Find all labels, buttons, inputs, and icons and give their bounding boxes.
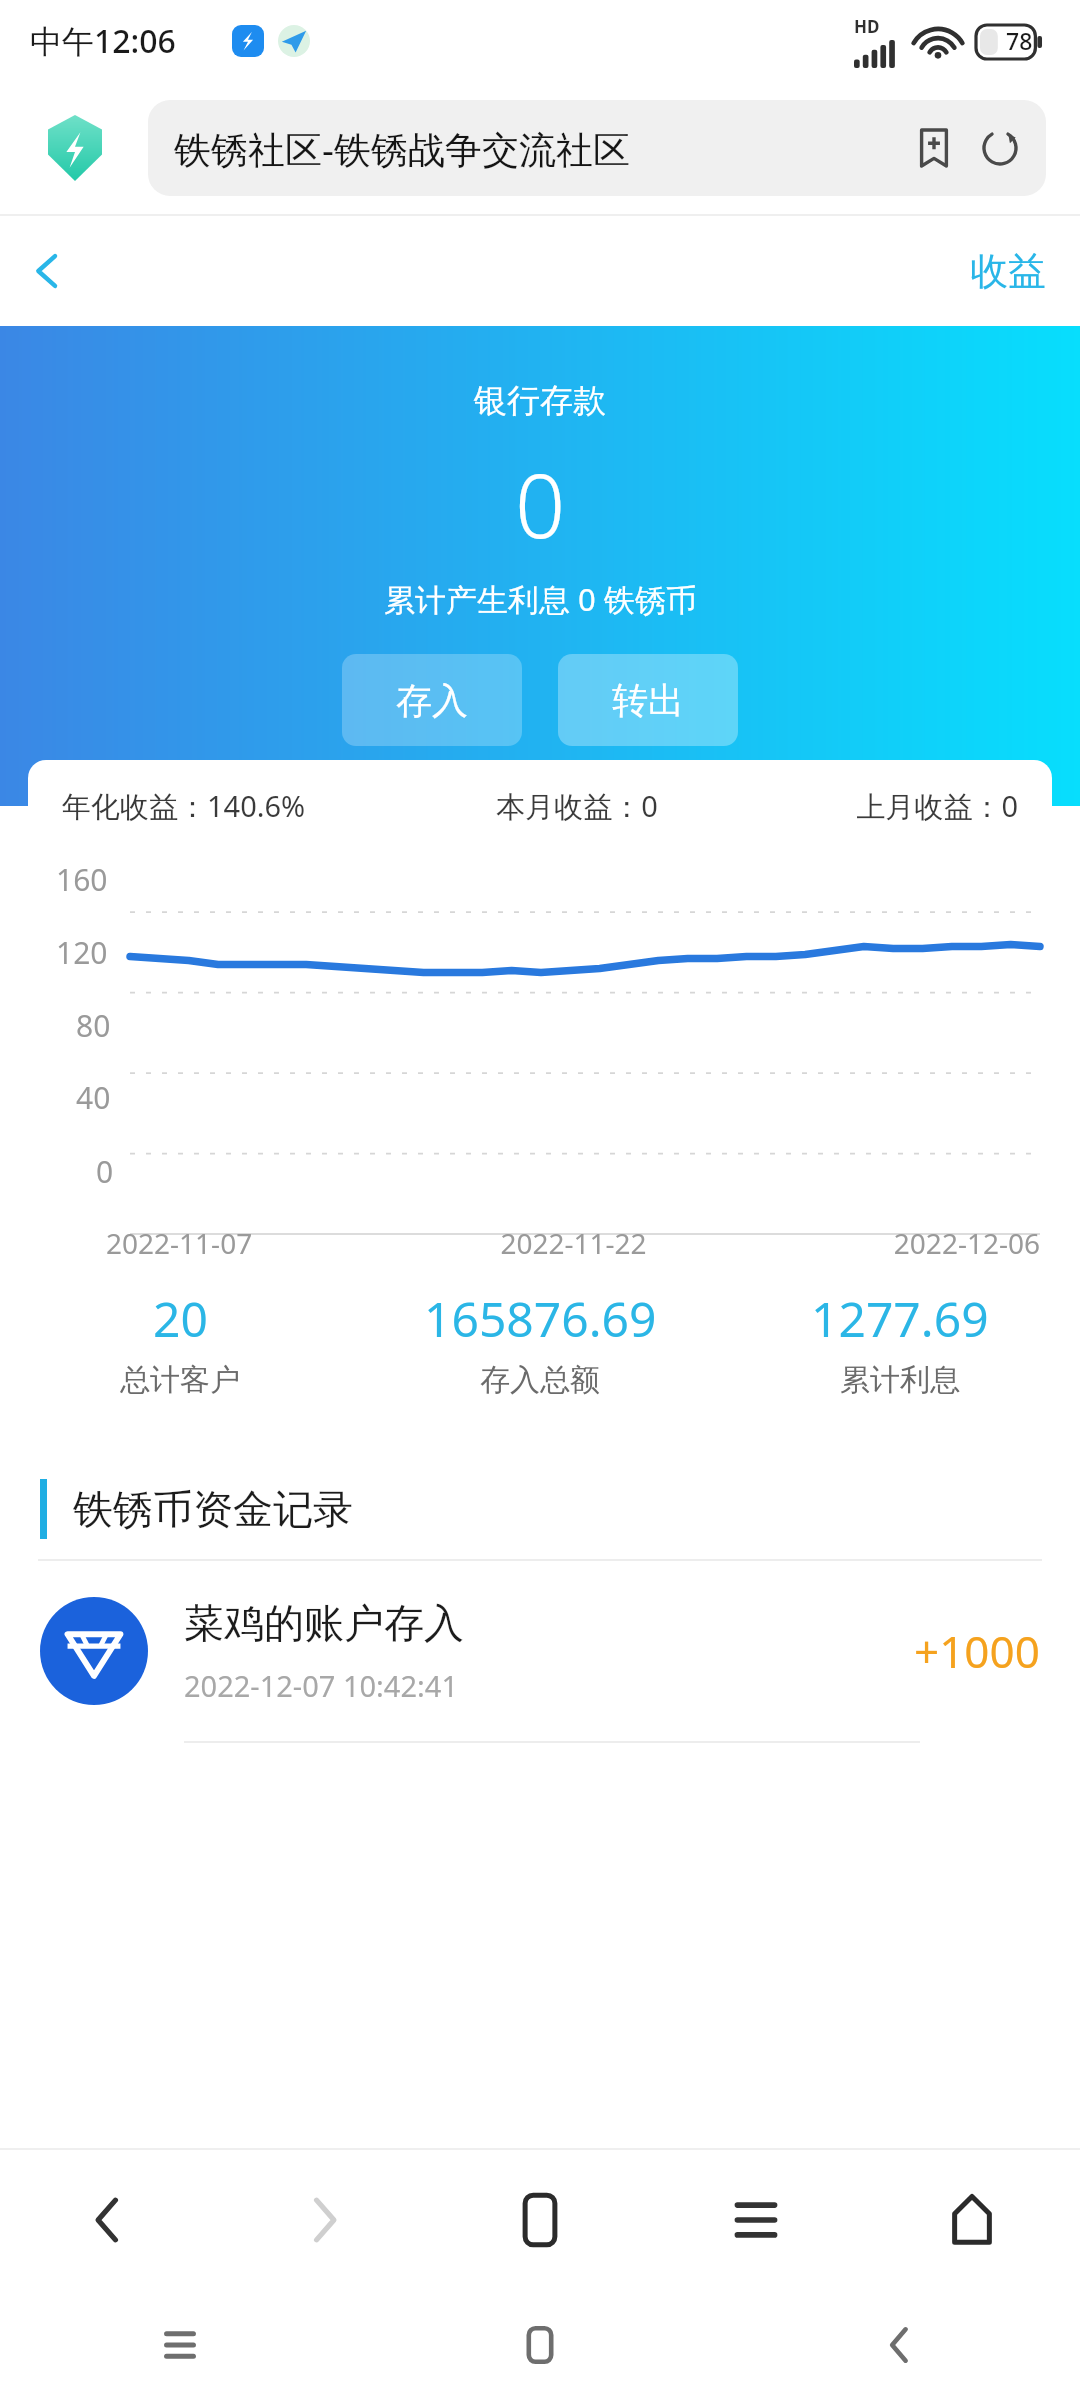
staticText: +1000 [914,1621,1040,1681]
staticText: 2022-11-07 [106,1224,418,1262]
staticText: 累计利息 [840,1361,960,1399]
staticText: 转出 [612,678,684,723]
button[interactable]: Back [720,2290,1080,2400]
button[interactable]: Menu [648,2150,864,2290]
staticText: 本月收益：0 [430,786,724,826]
staticText: 2022-11-22 [418,1224,729,1262]
button[interactable]: Back [0,223,96,319]
staticText: 铁锈币资金记录 [73,1484,353,1534]
staticText: 1277.69 [811,1286,989,1351]
button[interactable]: Add bookmark [914,128,954,168]
staticText: HD [854,15,880,38]
staticText: 总计客户 [120,1361,240,1399]
button[interactable]: Tabs [432,2150,648,2290]
staticText: 20 [153,1286,208,1351]
staticText: 上月收益：0 [724,786,1018,826]
staticText: 收益 [970,247,1046,295]
button[interactable]: 165876.69 [360,1286,720,1399]
staticText: 80 [76,1005,111,1046]
staticText: 0 [515,444,566,564]
button[interactable]: Back [0,2150,216,2290]
staticText: 0 [96,1151,114,1192]
button[interactable]: 20 [0,1286,360,1399]
button[interactable]: Forward [216,2150,432,2290]
button[interactable]: 1277.69 [720,1286,1080,1399]
staticText: 铁锈社区-铁锈战争交流社区 [174,123,914,174]
button[interactable]: 存入 [342,654,522,746]
staticText: 2022-12-06 [729,1224,1040,1262]
button[interactable]: Home [360,2290,720,2400]
staticText: 160 [56,859,108,900]
button[interactable]: Recents [0,2290,360,2400]
staticText: 累计产生利息 0 铁锈币 [384,578,697,620]
staticText: 菜鸡的账户存入 [184,1598,464,1648]
button[interactable]: 菜鸡的账户存入 [0,1561,1080,1743]
staticText: 存入 [396,678,468,723]
staticText: 银行存款 [474,380,606,422]
button[interactable]: Reload [980,128,1020,168]
button[interactable]: 收益 [936,229,1080,313]
staticText: 78 [1006,25,1033,56]
staticText: 120 [56,932,108,973]
staticText: 中午12:06 [30,19,176,63]
staticText: 年化收益：140.6% [62,786,430,826]
staticText: 存入总额 [480,1361,600,1399]
other: Site security [48,115,102,181]
staticText: 2022-12-07 10:42:41 [184,1666,458,1705]
button[interactable]: 铁锈社区-铁锈战争交流社区 [148,100,1046,196]
staticText: 40 [76,1077,111,1118]
button[interactable]: 转出 [558,654,738,746]
staticText: 165876.69 [424,1286,657,1351]
button[interactable]: Home [864,2150,1080,2290]
